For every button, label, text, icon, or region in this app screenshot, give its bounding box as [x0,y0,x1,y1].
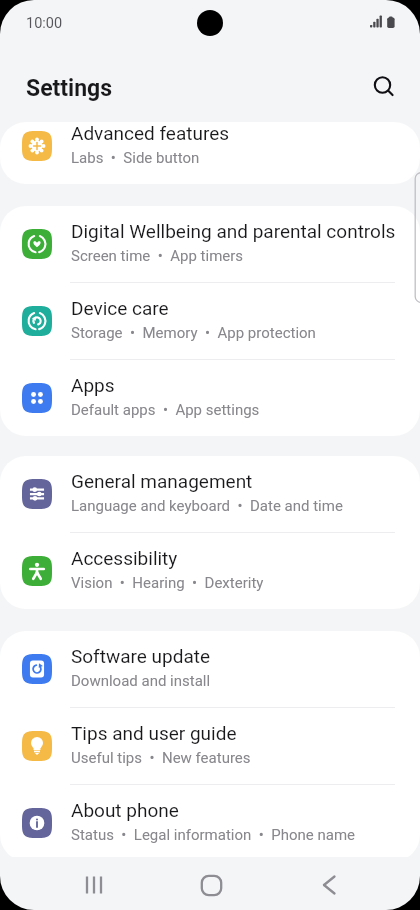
button[interactable]: Device care [0,283,420,360]
staticText: Download and install [71,672,211,690]
button[interactable]: Back [305,861,353,909]
staticText: Accessibility [71,547,178,569]
staticText: Tips and user guide [71,722,237,744]
staticText: Device care [71,297,169,319]
staticText: Digital Wellbeing and parental controls [71,220,396,242]
button[interactable]: Home [187,861,235,909]
staticText: Screen time • App timers [71,247,244,265]
staticText: Advanced features [71,122,230,144]
button[interactable]: Apps [0,360,420,436]
staticText: Default apps • App settings [71,401,260,419]
button[interactable]: Tips and user guide [0,708,420,785]
button[interactable]: Digital Wellbeing and parental controls [0,206,420,283]
button[interactable]: About phone [0,785,420,857]
staticText: Settings [26,75,113,102]
staticText: Software update [71,645,211,667]
staticText: About phone [71,799,179,821]
button[interactable]: General management [0,456,420,533]
staticText: Labs • Side button [71,149,200,167]
staticText: Storage • Memory • App protection [71,324,316,342]
button[interactable]: Software update [0,631,420,708]
button[interactable]: Accessibility [0,533,420,609]
staticText: Language and keyboard • Date and time [71,497,343,515]
staticText: Status • Legal information • Phone name [71,826,356,844]
button[interactable]: Search [362,63,406,107]
button[interactable]: Advanced features [0,122,420,177]
staticText: Apps [71,374,115,396]
staticText: 10:00 [26,15,63,32]
staticText: General management [71,470,253,492]
staticText: Useful tips • New features [71,749,251,767]
staticText: Vision • Hearing • Dexterity [71,574,264,592]
button[interactable]: Recent apps [70,861,118,909]
